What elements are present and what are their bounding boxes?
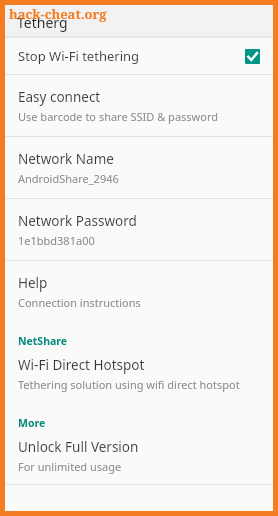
- button[interactable]: Easy connect: [5, 75, 273, 136]
- button[interactable]: Help: [5, 261, 273, 322]
- staticText: For unlimited usage: [18, 459, 122, 474]
- button[interactable]: Stop Wi-Fi tethering: [5, 38, 273, 74]
- other: Stop Wi-Fi tethering checkbox: [245, 49, 260, 64]
- staticText: Unlock Full Version: [18, 438, 139, 456]
- staticText: Network Password: [18, 212, 137, 230]
- staticText: Easy connect: [18, 88, 101, 106]
- button[interactable]: Network Name: [5, 137, 273, 198]
- staticText: Use barcode to share SSID & password: [18, 109, 218, 124]
- staticText: Tethering solution using wifi direct hot…: [18, 377, 240, 392]
- staticText: Wi-Fi Direct Hotspot: [18, 356, 145, 374]
- button[interactable]: Unlock Full Version: [5, 434, 273, 484]
- staticText: 1e1bbd381a00: [18, 233, 95, 248]
- staticText: Tetherg: [17, 13, 68, 32]
- staticText: Help: [18, 274, 48, 292]
- staticText: Stop Wi-Fi tethering: [18, 47, 245, 65]
- staticText: Network Name: [18, 150, 114, 168]
- button[interactable]: Wi-Fi Direct Hotspot: [5, 352, 273, 404]
- staticText: AndroidShare_2946: [18, 171, 119, 186]
- staticText: More: [18, 416, 46, 430]
- button[interactable]: Network Password: [5, 199, 273, 260]
- staticText: Connection instructions: [18, 295, 141, 310]
- staticText: hack-cheat.org: [9, 5, 107, 23]
- staticText: NetShare: [18, 334, 68, 348]
